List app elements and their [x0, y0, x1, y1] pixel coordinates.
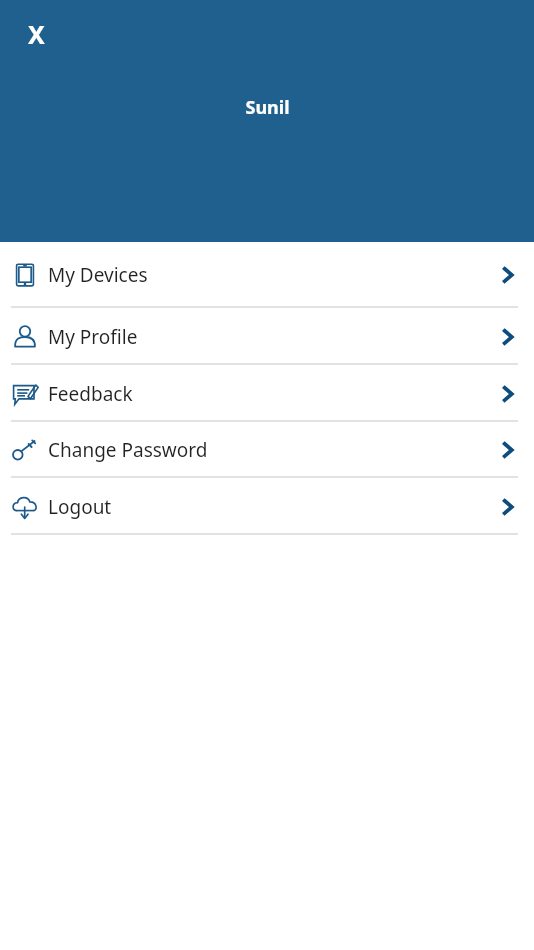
staticText: My Profile [48, 324, 138, 350]
staticText: My Devices [48, 262, 148, 288]
button[interactable]: Feedback [0, 365, 534, 422]
staticText: Change Password [48, 437, 208, 463]
staticText: Feedback [48, 381, 133, 407]
button[interactable]: Change Password [0, 422, 534, 478]
button[interactable]: My Devices [0, 242, 534, 308]
button[interactable]: Close [14, 12, 58, 56]
staticText: Logout [48, 494, 112, 520]
button[interactable]: My Profile [0, 308, 534, 365]
staticText: X [28, 17, 45, 51]
button[interactable]: Logout [0, 478, 534, 535]
staticText: Sunil [245, 95, 290, 120]
